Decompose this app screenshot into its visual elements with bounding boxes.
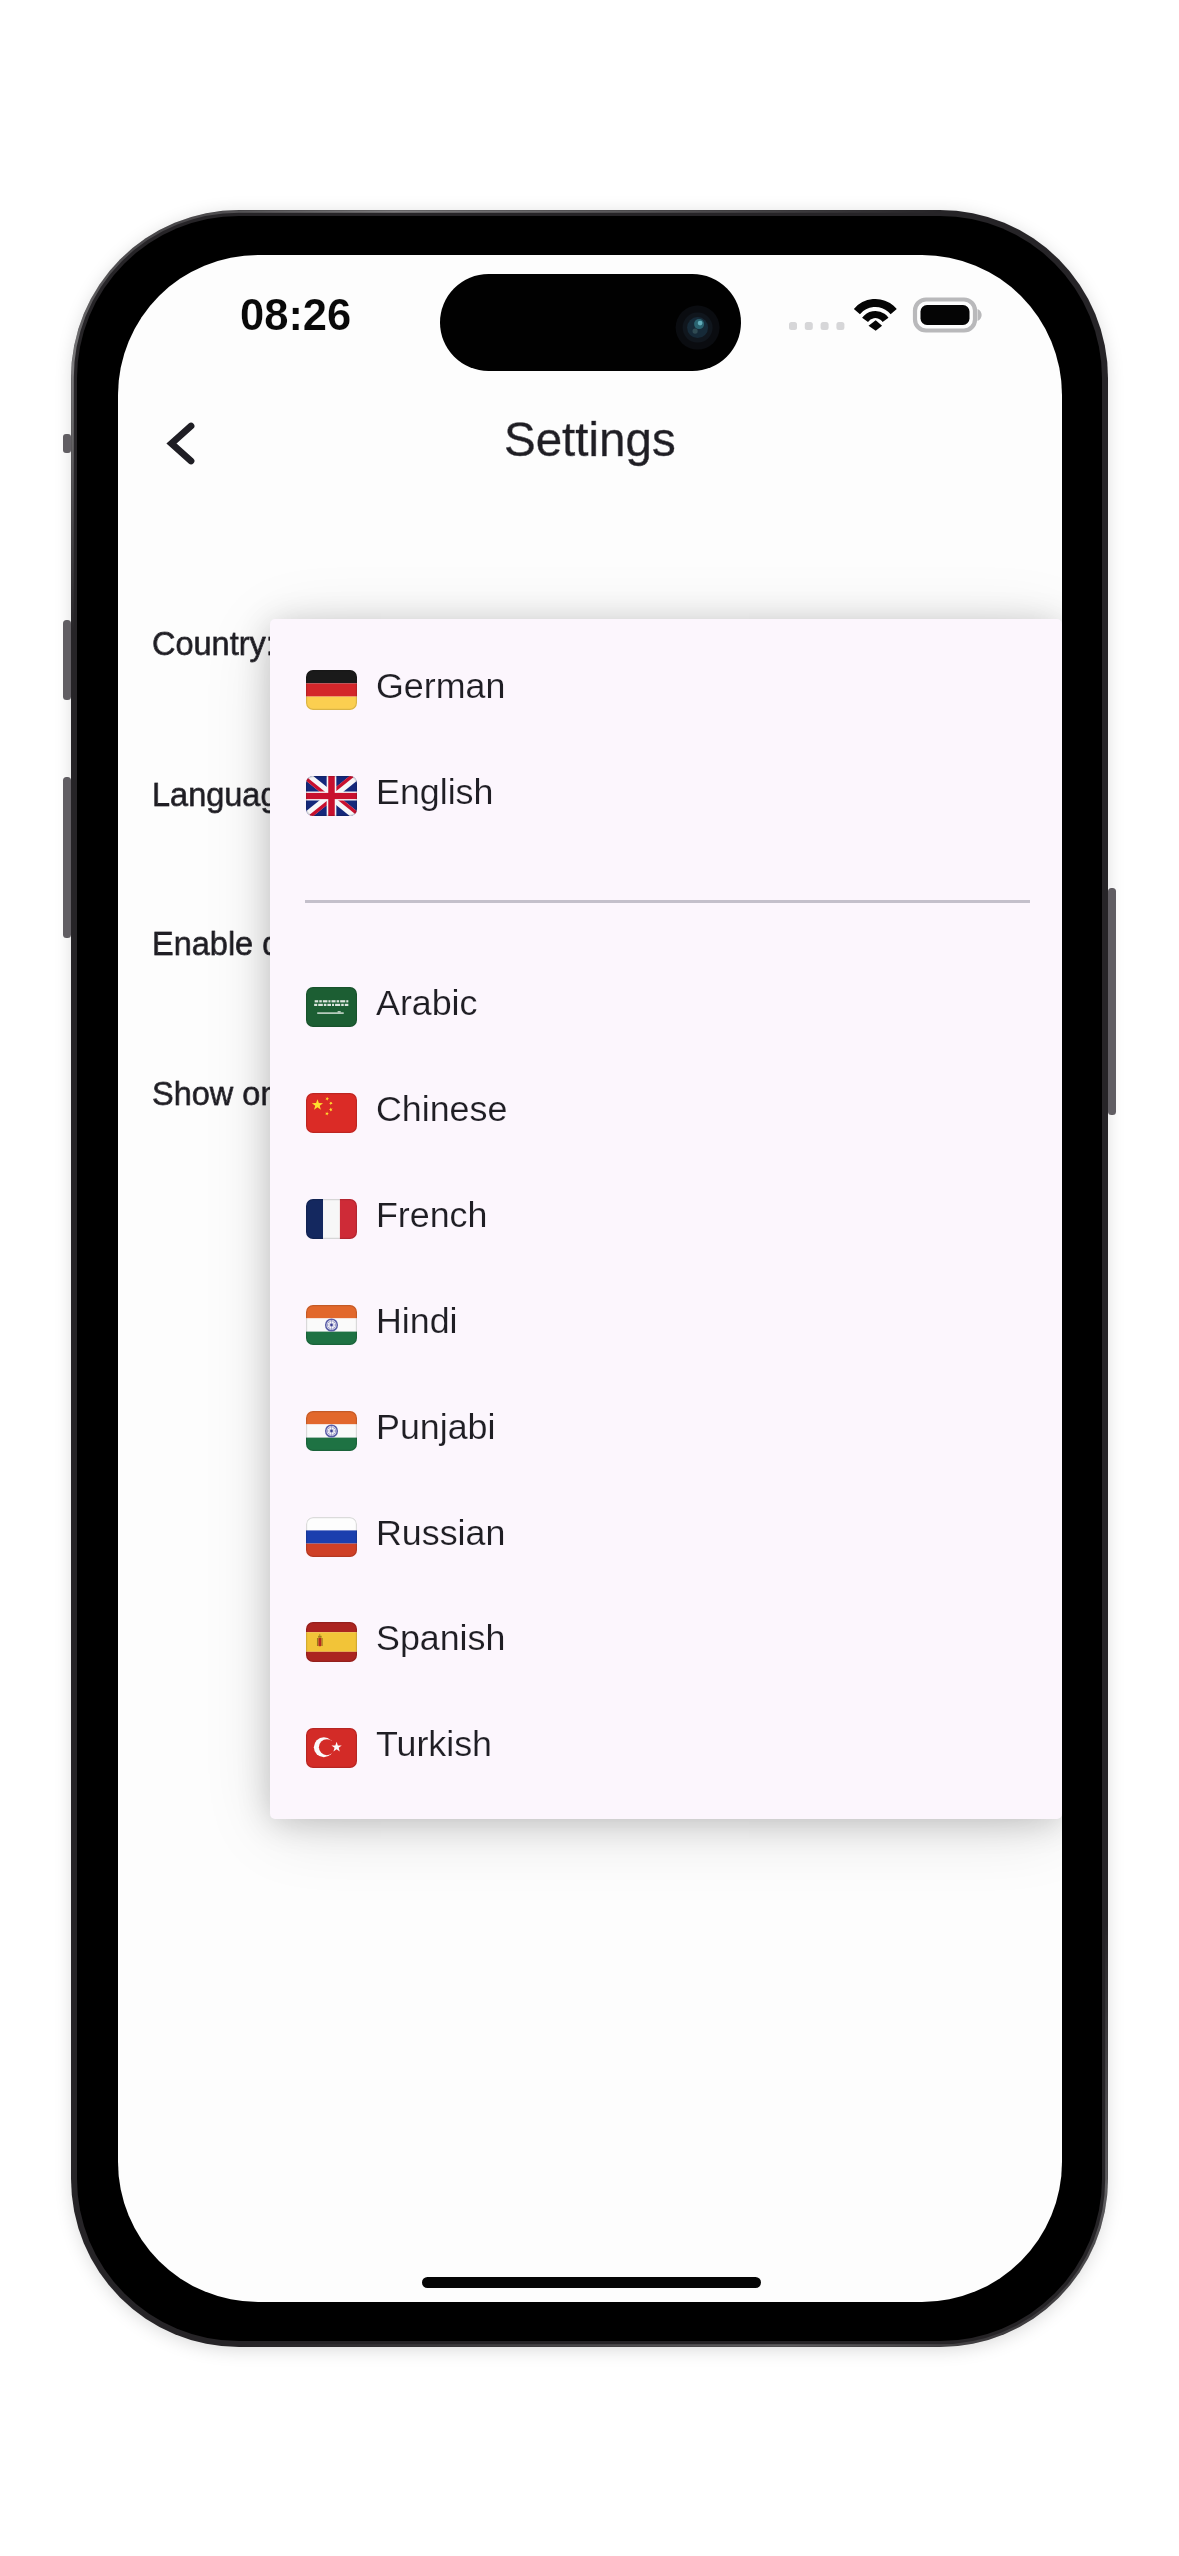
button[interactable]: Hindi	[270, 1272, 1062, 1378]
staticText: Russian	[376, 1513, 506, 1553]
staticText: Language:	[152, 777, 306, 813]
staticText: Arabic	[376, 983, 478, 1023]
staticText: Spanish	[376, 1618, 506, 1658]
button[interactable]: Arabic	[270, 954, 1062, 1060]
staticText: Language:	[152, 777, 306, 813]
staticText: Chinese	[376, 1089, 508, 1129]
button[interactable]: English	[270, 743, 1062, 849]
staticText: Hindi	[376, 1301, 458, 1341]
staticText: French	[376, 1195, 488, 1235]
staticText: Turkish	[376, 1724, 493, 1764]
button[interactable]: Turkish	[270, 1695, 1062, 1801]
button[interactable]: Spanish	[270, 1589, 1062, 1695]
staticText: Punjabi	[376, 1407, 496, 1447]
staticText: Show only favourites	[152, 1076, 452, 1112]
staticText: Country:	[152, 626, 275, 662]
staticText: Country:	[152, 626, 275, 662]
staticText: English	[376, 772, 494, 812]
staticText: German	[376, 666, 506, 706]
button[interactable]: Chinese	[270, 1060, 1062, 1166]
button[interactable]: French	[270, 1166, 1062, 1272]
staticText: 08:26	[240, 291, 352, 340]
button[interactable]: German	[270, 637, 1062, 743]
staticText: Show only favourites	[152, 1076, 452, 1112]
staticText: Settings	[504, 413, 676, 466]
staticText: Enable dark mode	[152, 926, 416, 962]
button[interactable]: Back	[144, 401, 214, 485]
button[interactable]: Punjabi	[270, 1378, 1062, 1484]
staticText: Settings	[504, 413, 676, 466]
staticText: Enable dark mode	[152, 926, 416, 962]
button[interactable]: Russian	[270, 1484, 1062, 1590]
